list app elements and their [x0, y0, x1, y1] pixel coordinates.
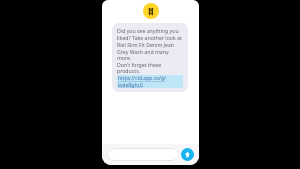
button[interactable]: Did you see anything you [112, 23, 188, 92]
staticText: Did you see anything you [117, 27, 179, 34]
staticText: liked? Take another look at [117, 34, 182, 41]
staticText: Riel Slim Fit Denim Jean [117, 41, 175, 48]
button[interactable]: Send [181, 148, 194, 161]
button[interactable]: Message input [107, 148, 179, 161]
staticText: https://cld.app.co/g/lodeRghc0 [118, 75, 182, 88]
button[interactable]: https://cld.app.co/g/lodeRghc0 [117, 75, 183, 88]
button[interactable]: Brand avatar [143, 3, 159, 19]
staticText: Don't forget these products. [117, 61, 183, 74]
staticText: Grey Wash and many more. [117, 48, 183, 61]
